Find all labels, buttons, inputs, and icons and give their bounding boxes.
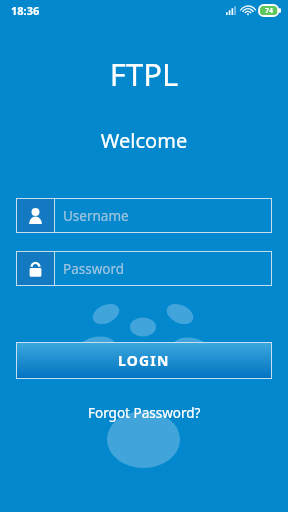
other: Username bbox=[16, 198, 54, 233]
staticText: Forgot Password? bbox=[88, 404, 201, 422]
staticText: 18:36 bbox=[11, 3, 40, 18]
other: Password bbox=[16, 251, 54, 286]
button[interactable]: Forgot Password? bbox=[0, 401, 288, 425]
button[interactable]: Password bbox=[16, 251, 272, 286]
staticText: FTPL bbox=[0, 53, 288, 95]
staticText: Welcome bbox=[0, 127, 288, 154]
button[interactable]: Username bbox=[16, 198, 272, 233]
staticText: 74 bbox=[265, 6, 274, 16]
staticText: Username bbox=[63, 207, 129, 225]
staticText: LOGIN bbox=[118, 351, 170, 370]
button[interactable]: LOGIN bbox=[16, 342, 272, 379]
staticText: Password bbox=[63, 260, 125, 278]
